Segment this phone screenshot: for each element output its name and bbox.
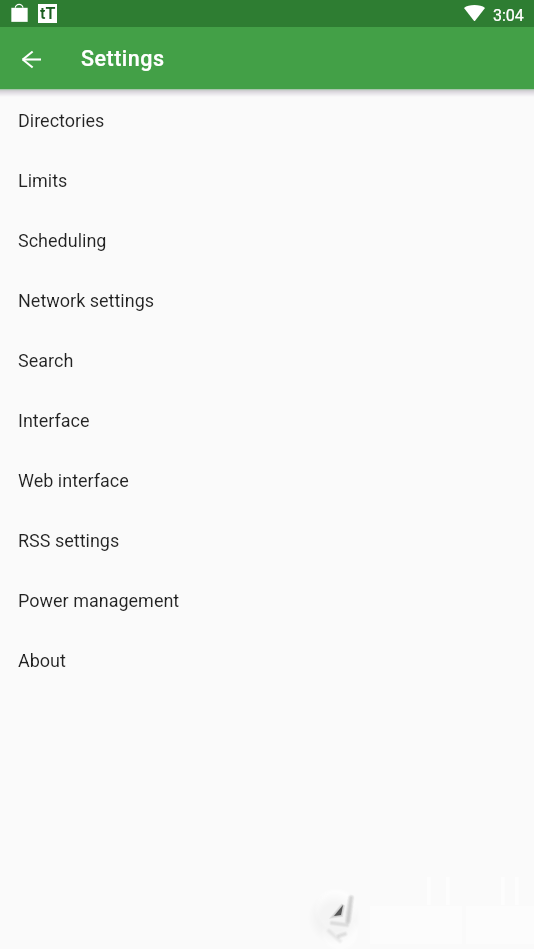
button[interactable]: About [0,630,534,690]
button[interactable]: Limits [0,150,534,210]
staticText: 3:04 [493,6,524,25]
staticText: Settings [81,46,165,71]
staticText: tT [40,4,56,23]
staticText: Network settings [18,290,155,311]
button[interactable]: Scheduling [0,210,534,270]
staticText: Power management [18,590,180,611]
staticText: Limits [18,170,68,191]
staticText: Web interface [18,470,129,491]
staticText: Interface [18,410,90,431]
button[interactable]: RSS settings [0,510,534,570]
staticText: Scheduling [18,230,107,251]
button[interactable]: Power management [0,570,534,630]
button[interactable]: Interface [0,390,534,450]
button[interactable]: Directories [0,90,534,150]
staticText: Directories [18,110,105,131]
staticText: RSS settings [18,530,120,551]
button[interactable]: Network settings [0,270,534,330]
button[interactable]: Search [0,330,534,390]
staticText: Search [18,350,74,371]
staticText: About [18,650,66,671]
button[interactable]: Web interface [0,450,534,510]
button[interactable]: Back [3,31,59,87]
